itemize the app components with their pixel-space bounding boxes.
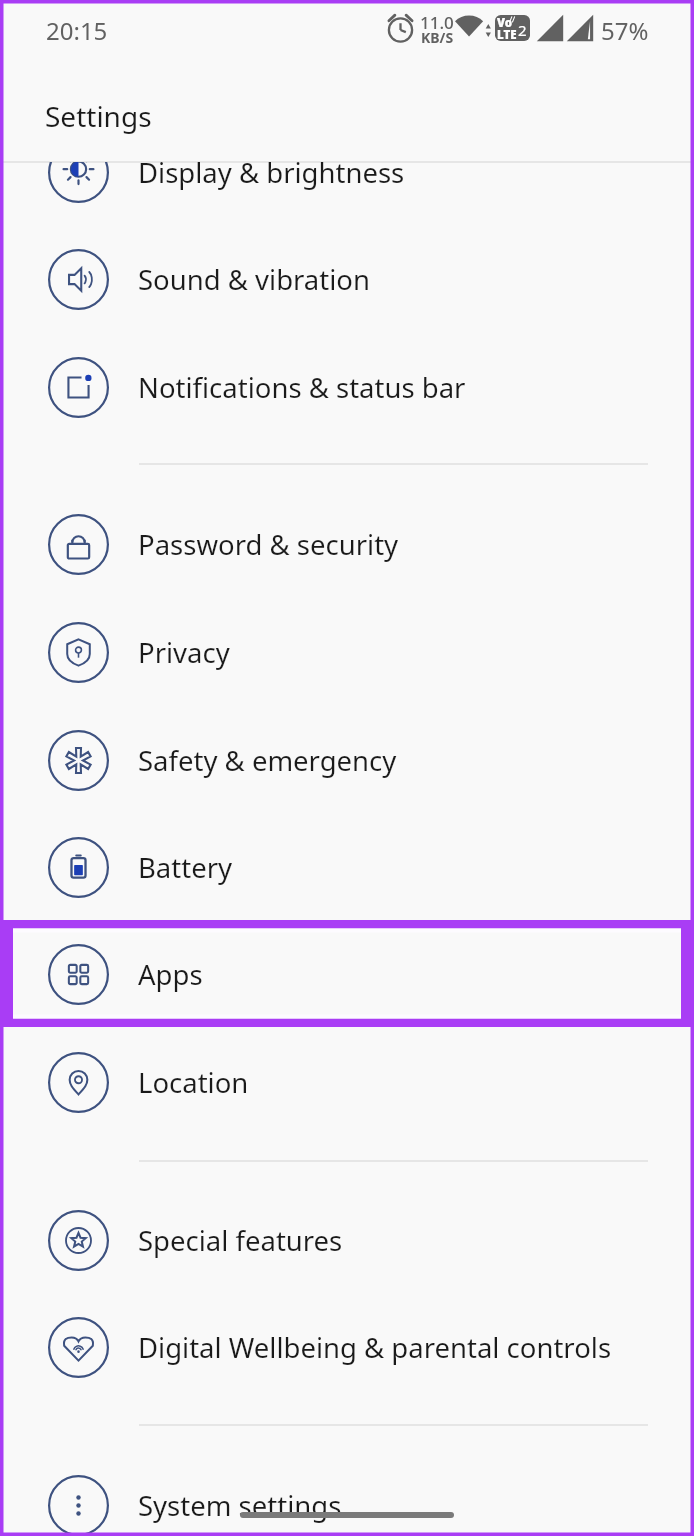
staticText: LTE — [497, 27, 517, 43]
staticText: Vo — [497, 15, 513, 31]
staticText: Digital Wellbeing & parental controls — [138, 1329, 612, 1366]
staticText: Special features — [138, 1222, 343, 1259]
staticText: Display & brightness — [138, 162, 405, 191]
staticText: Location — [138, 1064, 249, 1101]
button[interactable]: Notifications & status bar — [0, 334, 694, 440]
staticText: System settings — [138, 1487, 342, 1524]
button[interactable]: Display & brightness — [0, 162, 694, 225]
button[interactable]: Digital Wellbeing & parental controls — [0, 1294, 694, 1400]
staticText: 20:15 — [46, 14, 108, 47]
staticText: Notifications & status bar — [138, 369, 466, 406]
staticText: Battery — [138, 849, 233, 886]
button[interactable]: Battery — [0, 814, 694, 920]
button[interactable]: Special features — [0, 1187, 694, 1293]
button[interactable]: Privacy — [0, 599, 694, 705]
staticText: 2 — [518, 20, 527, 40]
button[interactable]: Safety & emergency — [0, 707, 694, 813]
button[interactable]: Password & security — [0, 491, 694, 597]
button[interactable]: Home — [240, 1512, 454, 1518]
staticText: Sound & vibration — [138, 261, 370, 298]
staticText: Apps — [138, 956, 203, 993]
staticText: KB/S — [421, 28, 454, 47]
staticText: 57% — [601, 14, 649, 47]
staticText: Settings — [45, 97, 152, 135]
staticText: Password & security — [138, 526, 399, 563]
staticText: 11.0 — [420, 11, 454, 34]
button[interactable]: Location — [0, 1029, 694, 1135]
button[interactable]: System settings — [0, 1452, 694, 1536]
button[interactable]: Sound & vibration — [0, 226, 694, 332]
staticText: Safety & emergency — [138, 742, 397, 779]
staticText: Privacy — [138, 634, 230, 671]
button[interactable]: Apps — [0, 921, 694, 1027]
